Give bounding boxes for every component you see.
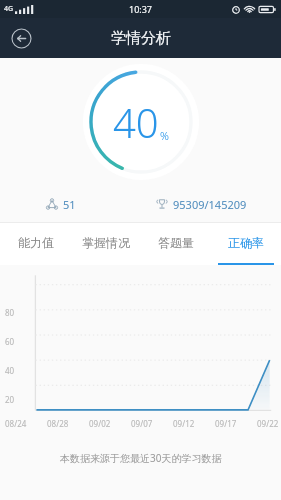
- staticText: 09/07: [131, 418, 153, 429]
- button[interactable]: 能力值: [0, 223, 71, 265]
- staticText: 4G: [4, 4, 14, 14]
- staticText: 40: [113, 95, 159, 149]
- staticText: 10:37: [129, 3, 153, 15]
- button[interactable]: 正确率: [211, 223, 281, 265]
- staticText: 能力值: [18, 235, 54, 250]
- staticText: 95309/145209: [173, 197, 247, 212]
- staticText: 学情分析: [111, 29, 171, 48]
- staticText: 09/02: [89, 418, 111, 429]
- staticText: 09/12: [173, 418, 195, 429]
- button[interactable]: 答题量: [141, 223, 211, 265]
- staticText: 08/28: [47, 418, 69, 429]
- staticText: 20: [5, 394, 15, 405]
- staticText: 51: [63, 197, 76, 212]
- staticText: 60: [5, 336, 15, 347]
- staticText: 09/17: [215, 418, 237, 429]
- staticText: 09/22: [257, 418, 279, 429]
- button[interactable]: Back: [7, 24, 35, 52]
- staticText: 答题量: [158, 235, 194, 250]
- staticText: %: [160, 128, 169, 143]
- button[interactable]: 51: [0, 186, 122, 222]
- staticText: 正确率: [228, 235, 264, 250]
- staticText: 08/24: [5, 418, 27, 429]
- staticText: 40: [5, 365, 15, 376]
- button[interactable]: 掌握情况: [71, 223, 141, 265]
- staticText: 掌握情况: [82, 235, 130, 250]
- button[interactable]: 95309/145209: [122, 186, 281, 222]
- staticText: 80: [5, 307, 15, 318]
- staticText: 本数据来源于您最近30天的学习数据: [60, 451, 222, 465]
